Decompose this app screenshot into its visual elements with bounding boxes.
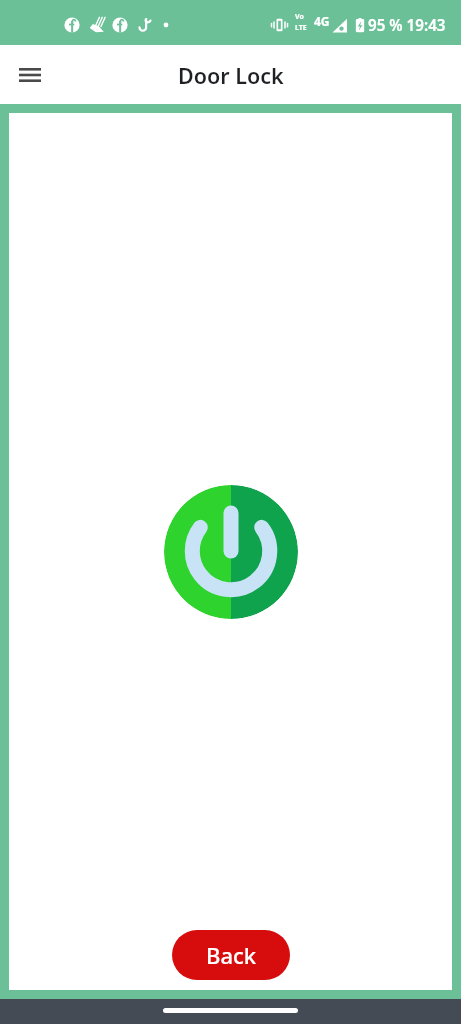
staticText: LTE xyxy=(295,23,307,33)
staticText: Back xyxy=(206,940,257,970)
button[interactable]: Back xyxy=(172,930,290,980)
button[interactable]: Open navigation menu xyxy=(8,53,52,97)
staticText: Vo xyxy=(295,12,304,22)
staticText: 95 % 19:43 xyxy=(368,15,446,36)
staticText: Door Lock xyxy=(178,61,284,90)
button[interactable]: Toggle door lock power xyxy=(164,485,298,619)
staticText: 4G xyxy=(314,13,330,29)
